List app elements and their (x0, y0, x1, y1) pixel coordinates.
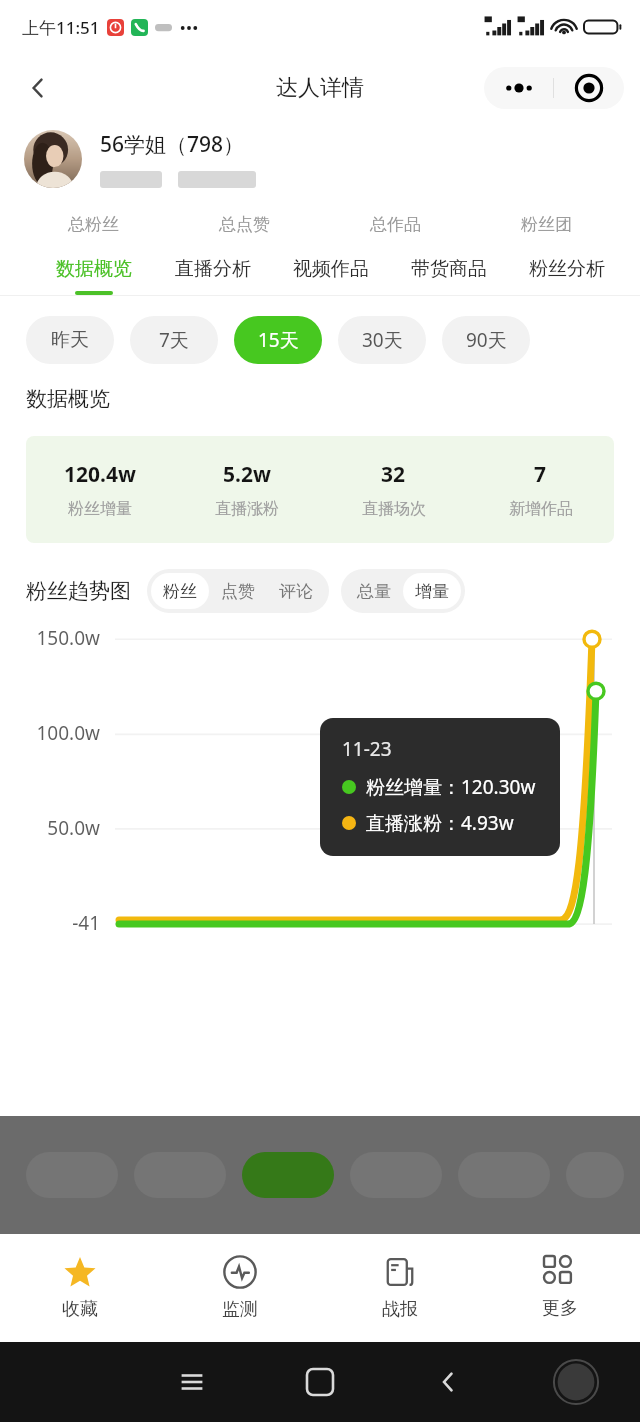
staticText: 数据概览 (56, 257, 132, 281)
staticText: 150.0w (0, 625, 100, 651)
staticText: 5.2w (223, 460, 271, 489)
staticText: 达人详情 (276, 74, 364, 102)
button[interactable]: 粉丝 (151, 573, 209, 609)
staticText: 粉丝分析 (529, 257, 605, 281)
button[interactable]: 总点赞 (169, 214, 320, 235)
staticText: 直播涨粉：4.93w (366, 810, 514, 836)
staticText: 90天 (466, 327, 507, 353)
staticText: 粉丝 (163, 581, 197, 602)
button[interactable]: 5.2w (173, 460, 320, 519)
button[interactable]: 总作品 (320, 214, 471, 235)
button[interactable]: 30天 (338, 316, 426, 364)
staticText: 评论 (279, 581, 313, 602)
staticText: 120.4w (64, 460, 136, 489)
button[interactable]: 数据概览 (34, 257, 153, 295)
button[interactable]: Recents (128, 1369, 256, 1395)
staticText: 昨天 (51, 328, 89, 352)
staticText: 直播场次 (362, 499, 426, 519)
staticText: 更多 (542, 1297, 578, 1320)
button[interactable]: 15天 (234, 316, 322, 364)
staticText: 粉丝趋势图 (26, 578, 131, 604)
staticText: 7天 (159, 327, 189, 353)
staticText: 监测 (222, 1298, 258, 1321)
staticText: 56学姐（798） (100, 130, 245, 159)
button[interactable]: 昨天 (26, 316, 114, 364)
button[interactable]: 7天 (130, 316, 218, 364)
staticText: 直播涨粉 (215, 499, 279, 519)
button[interactable]: 总量 (345, 573, 403, 609)
staticText: 32 (381, 460, 406, 489)
button[interactable]: 战报 (320, 1234, 480, 1342)
staticText: 100.0w (0, 720, 100, 746)
button[interactable]: Back (384, 1371, 512, 1393)
staticText: 新增作品 (509, 499, 573, 519)
button[interactable]: 粉丝分析 (508, 257, 626, 295)
staticText: 直播分析 (175, 257, 251, 281)
staticText: 战报 (382, 1298, 418, 1321)
button[interactable]: 32 (320, 460, 467, 519)
button[interactable]: 视频作品 (272, 257, 390, 295)
staticText: 50.0w (0, 815, 100, 841)
button[interactable]: 更多 (480, 1234, 640, 1342)
staticText: 总量 (357, 581, 391, 602)
staticText: 增量 (415, 581, 449, 602)
staticText: 15天 (258, 327, 299, 353)
button[interactable]: Back (12, 62, 64, 114)
staticText: 总点赞 (219, 214, 270, 235)
staticText: 带货商品 (411, 257, 487, 281)
staticText: 视频作品 (293, 257, 369, 281)
button[interactable]: 直播分析 (153, 257, 272, 295)
button[interactable]: 粉丝团 (471, 214, 622, 235)
button[interactable]: 带货商品 (390, 257, 508, 295)
button[interactable]: 监测 (160, 1234, 320, 1342)
button[interactable]: Home (256, 1369, 384, 1395)
button[interactable]: 7 (467, 460, 614, 519)
button[interactable]: More options (484, 67, 553, 109)
staticText: 总作品 (370, 214, 421, 235)
staticText: -41 (0, 910, 100, 936)
staticText: 粉丝增量：120.30w (366, 774, 536, 800)
button[interactable]: 总粉丝 (18, 214, 169, 235)
staticText: 数据概览 (26, 386, 110, 412)
staticText: 粉丝团 (521, 214, 572, 235)
button[interactable]: Record (554, 67, 624, 109)
staticText: 上午11:51 (22, 16, 100, 39)
staticText: 总粉丝 (68, 214, 119, 235)
staticText: 点赞 (221, 581, 255, 602)
button[interactable]: 点赞 (209, 573, 267, 609)
button[interactable]: 120.4w (26, 460, 173, 519)
button[interactable]: 90天 (442, 316, 530, 364)
staticText: 11-23 (342, 736, 392, 762)
staticText: 7 (534, 460, 547, 489)
staticText: 收藏 (62, 1298, 98, 1321)
button[interactable]: 收藏 (0, 1234, 160, 1342)
button[interactable]: 增量 (403, 573, 461, 609)
staticText: 粉丝增量 (68, 499, 132, 519)
staticText: 30天 (362, 327, 403, 353)
button[interactable]: 评论 (267, 573, 325, 609)
